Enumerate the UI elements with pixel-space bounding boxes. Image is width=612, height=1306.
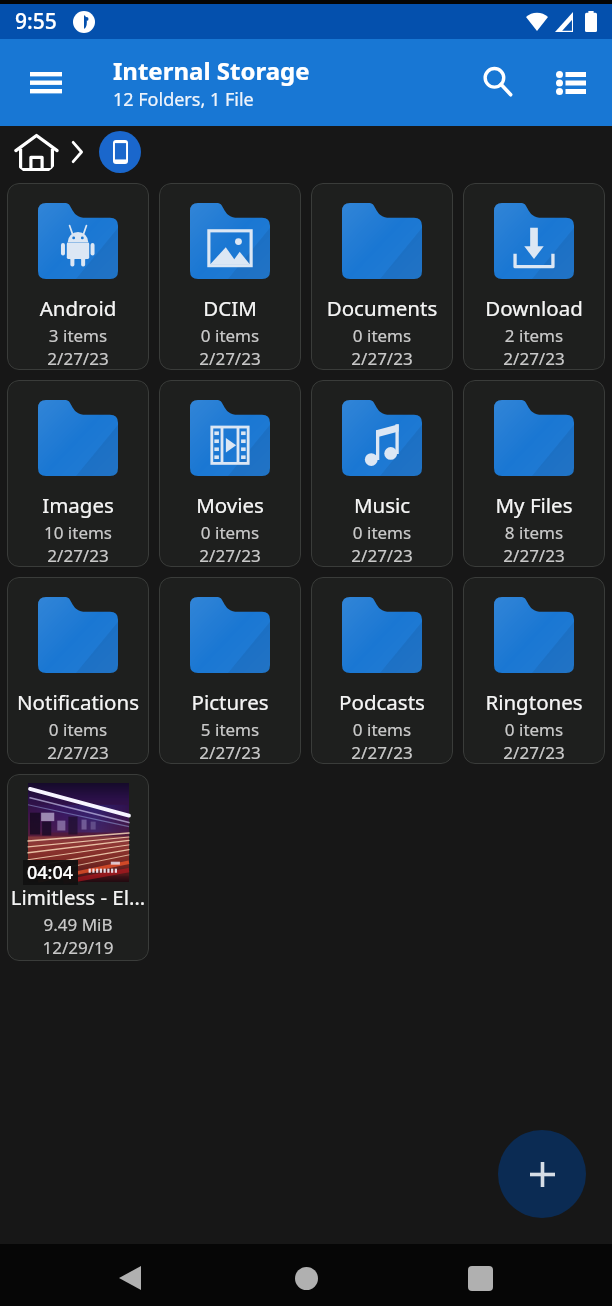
staticText: 0 items: [311, 718, 453, 741]
staticText: Podcasts: [314, 688, 450, 716]
button[interactable]: Android: [7, 183, 149, 370]
button[interactable]: Add: [498, 1130, 586, 1218]
staticText: 12 Folders, 1 File: [113, 87, 254, 112]
staticText: Ringtones: [466, 688, 602, 716]
staticText: Android: [10, 294, 146, 322]
staticText: 04:04: [27, 860, 74, 885]
staticText: Limitless - El…: [9, 883, 147, 911]
staticText: 2/27/23: [7, 347, 149, 370]
staticText: Images: [10, 491, 146, 519]
staticText: 2/27/23: [7, 741, 149, 764]
staticText: 0 items: [159, 324, 301, 347]
button[interactable]: Home: [266, 1244, 346, 1306]
staticText: 12/29/19: [7, 936, 149, 959]
staticText: 2/27/23: [159, 347, 301, 370]
staticText: Internal Storage: [113, 54, 310, 87]
button[interactable]: Download: [463, 183, 605, 370]
staticText: Movies: [162, 491, 298, 519]
staticText: Music: [314, 491, 450, 519]
button[interactable]: Ringtones: [463, 577, 605, 764]
button[interactable]: Internal Storage: [99, 131, 141, 173]
button[interactable]: My Files: [463, 380, 605, 567]
staticText: 0 items: [311, 324, 453, 347]
button[interactable]: Music: [311, 380, 453, 567]
button[interactable]: Home: [13, 129, 59, 175]
staticText: 0 items: [7, 718, 149, 741]
button[interactable]: Pictures: [159, 577, 301, 764]
button[interactable]: 04:04: [7, 774, 149, 961]
staticText: Notifications: [10, 688, 146, 716]
staticText: DCIM: [162, 294, 298, 322]
staticText: Download: [466, 294, 602, 322]
staticText: 2 items: [463, 324, 605, 347]
staticText: 8 items: [463, 521, 605, 544]
button[interactable]: View and sort options: [544, 56, 598, 110]
staticText: 2/27/23: [7, 544, 149, 567]
staticText: 2/27/23: [311, 347, 453, 370]
staticText: My Files: [466, 491, 602, 519]
staticText: 0 items: [311, 521, 453, 544]
staticText: 0 items: [463, 718, 605, 741]
staticText: Pictures: [162, 688, 298, 716]
button[interactable]: Documents: [311, 183, 453, 370]
staticText: 2/27/23: [463, 347, 605, 370]
staticText: 2/27/23: [159, 741, 301, 764]
button[interactable]: Open navigation drawer: [16, 53, 76, 113]
staticText: 2/27/23: [463, 741, 605, 764]
button[interactable]: Notifications: [7, 577, 149, 764]
button[interactable]: Back: [90, 1244, 170, 1306]
button[interactable]: Images: [7, 380, 149, 567]
staticText: Documents: [314, 294, 450, 322]
staticText: 2/27/23: [463, 544, 605, 567]
staticText: 10 items: [7, 521, 149, 544]
staticText: 2/27/23: [311, 544, 453, 567]
staticText: 5 items: [159, 718, 301, 741]
staticText: 2/27/23: [159, 544, 301, 567]
button[interactable]: Movies: [159, 380, 301, 567]
staticText: 2/27/23: [311, 741, 453, 764]
button[interactable]: Podcasts: [311, 577, 453, 764]
button[interactable]: DCIM: [159, 183, 301, 370]
button[interactable]: Search: [470, 56, 524, 110]
staticText: 9:55: [15, 7, 57, 36]
staticText: 9.49 MiB: [7, 913, 149, 936]
button[interactable]: Recent apps: [440, 1244, 520, 1306]
staticText: 0 items: [159, 521, 301, 544]
staticText: 3 items: [7, 324, 149, 347]
